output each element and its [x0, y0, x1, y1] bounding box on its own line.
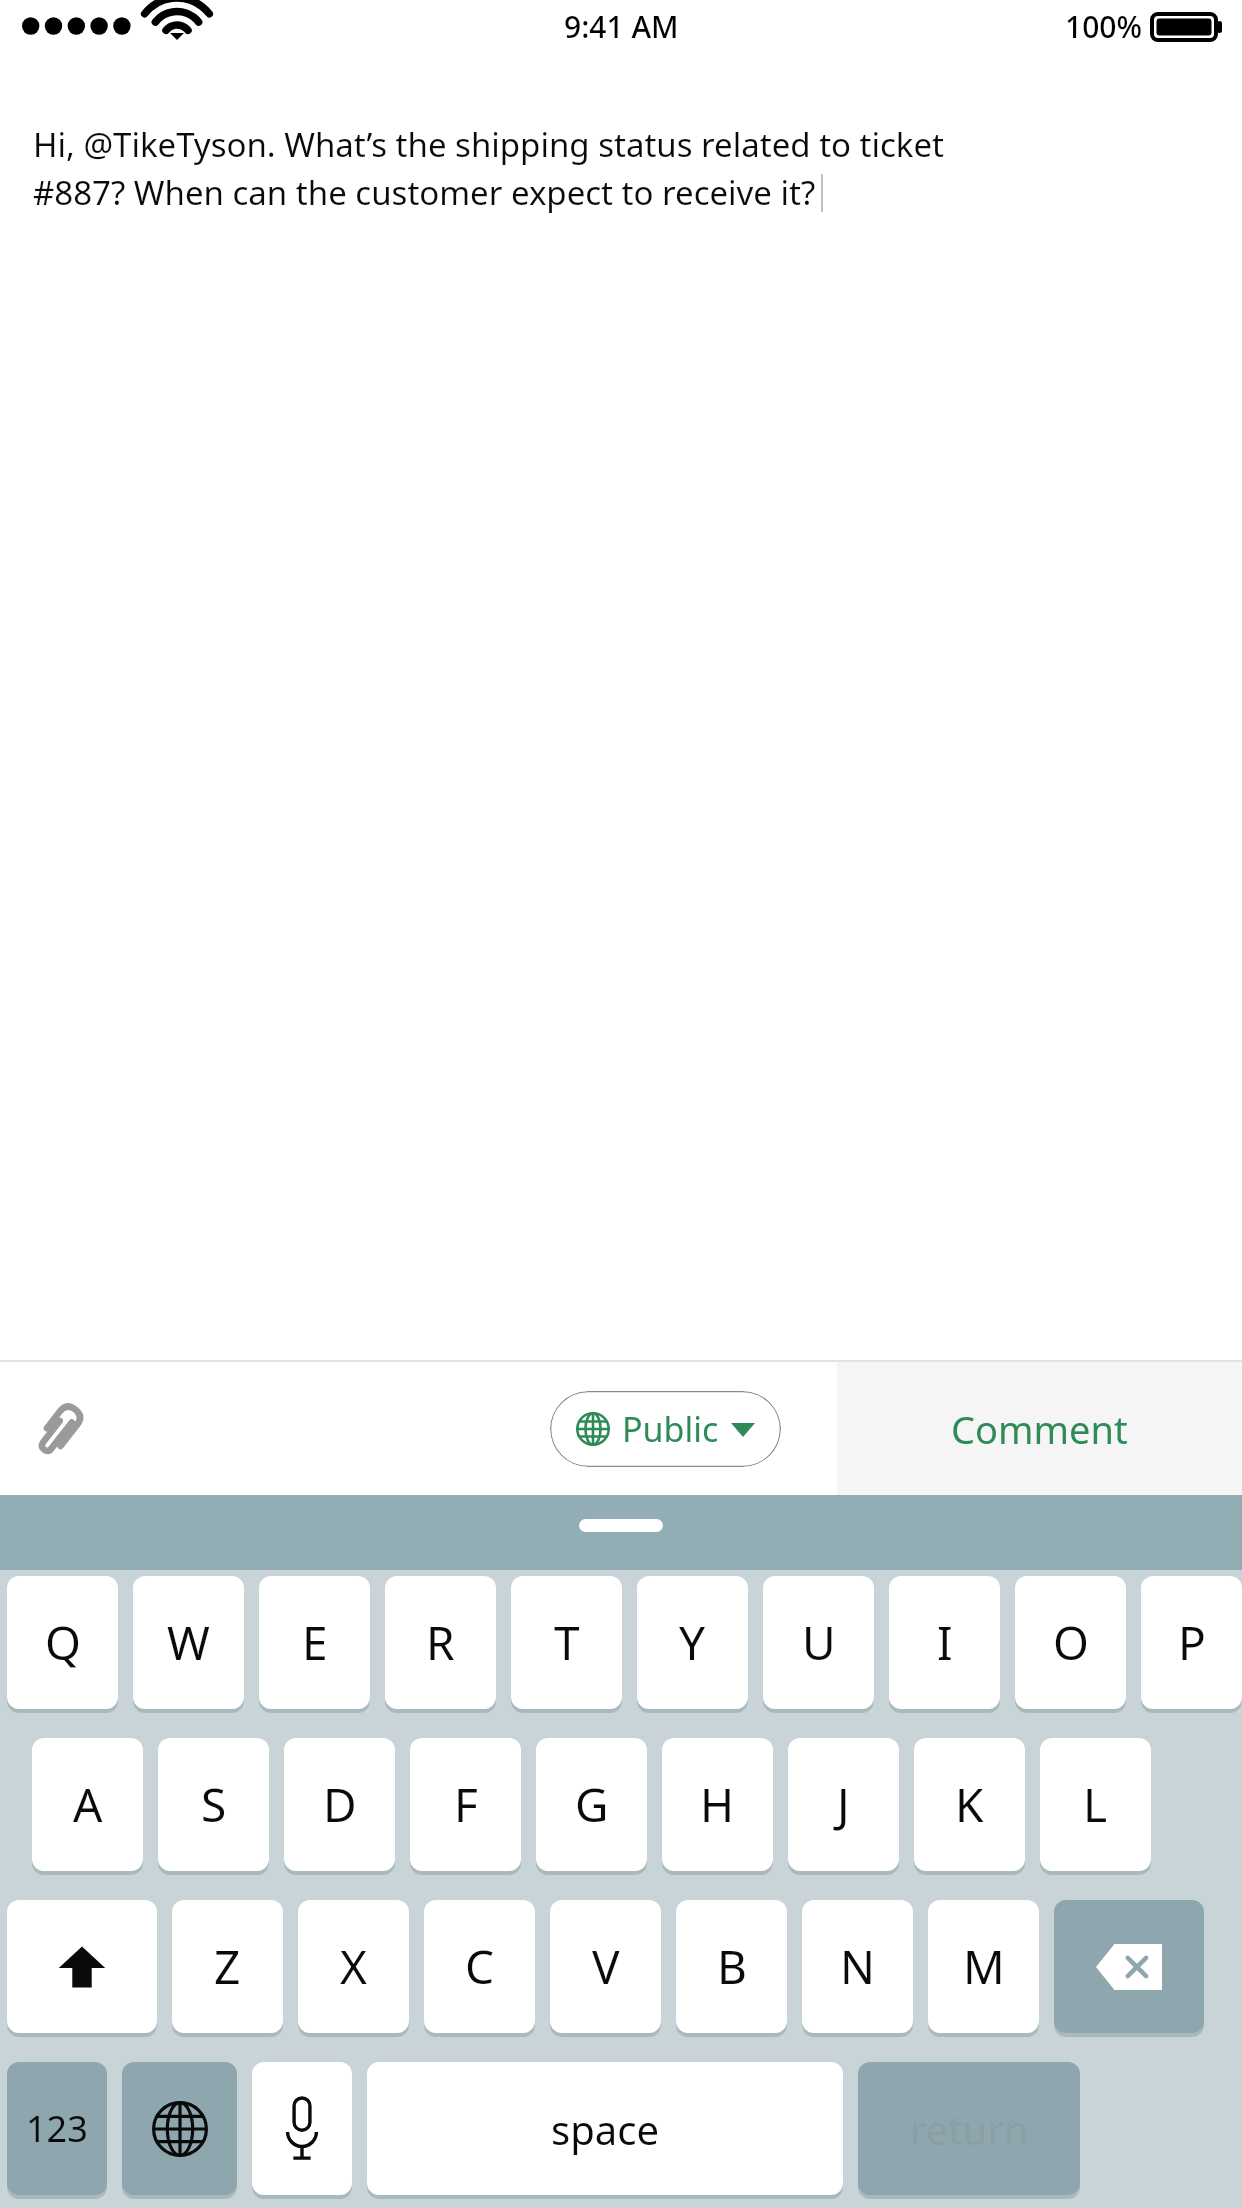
staticText: Y — [679, 1611, 706, 1674]
button[interactable]: return — [858, 2062, 1080, 2199]
staticText: M — [963, 1935, 1005, 1998]
staticText: X — [340, 1935, 367, 1998]
button[interactable]: U — [763, 1576, 874, 1713]
button[interactable]: N — [802, 1900, 913, 2037]
staticText: Z — [214, 1935, 241, 1998]
button[interactable]: D — [284, 1738, 395, 1875]
staticText: K — [955, 1773, 984, 1836]
button[interactable]: X — [298, 1900, 409, 2037]
button[interactable]: Hi, @TikeTyson. What’s the shipping stat… — [0, 52, 1242, 1360]
staticText: W — [167, 1611, 210, 1674]
staticText: 123 — [26, 2104, 88, 2153]
button[interactable]: V — [550, 1900, 661, 2037]
staticText: T — [554, 1611, 580, 1674]
staticText: Hi, @TikeTyson. What’s the shipping stat… — [33, 122, 944, 167]
staticText: S — [201, 1773, 227, 1836]
button[interactable]: H — [662, 1738, 773, 1875]
button[interactable]: A — [32, 1738, 143, 1875]
button[interactable]: S — [158, 1738, 269, 1875]
staticText: F — [454, 1773, 478, 1836]
staticText: J — [837, 1773, 850, 1836]
staticText: 100% — [1065, 6, 1143, 47]
staticText: Public — [622, 1406, 719, 1452]
staticText: Q — [45, 1611, 81, 1674]
button[interactable]: Q — [7, 1576, 118, 1713]
staticText: G — [575, 1773, 609, 1836]
staticText: C — [465, 1935, 495, 1998]
button[interactable]: B — [676, 1900, 787, 2037]
button[interactable]: T — [511, 1576, 622, 1713]
button[interactable]: Public — [550, 1391, 781, 1467]
staticText: #887? When can the customer expect to re… — [33, 170, 816, 215]
staticText: D — [323, 1773, 357, 1836]
staticText: space — [551, 2102, 659, 2156]
button[interactable]: J — [788, 1738, 899, 1875]
staticText: return — [910, 2102, 1029, 2156]
button[interactable]: Key — [1054, 1900, 1204, 2037]
staticText: V — [592, 1935, 620, 1998]
button[interactable]: L — [1040, 1738, 1151, 1875]
staticText: O — [1053, 1611, 1089, 1674]
button[interactable]: W — [133, 1576, 244, 1713]
button[interactable]: R — [385, 1576, 496, 1713]
staticText: 9:41 AM — [564, 6, 679, 47]
button[interactable]: Keyboard handle — [579, 1519, 663, 1532]
staticText: B — [717, 1935, 747, 1998]
button[interactable]: I — [889, 1576, 1000, 1713]
button[interactable]: C — [424, 1900, 535, 2037]
staticText: U — [802, 1611, 836, 1674]
staticText: H — [700, 1773, 735, 1836]
button[interactable]: Z — [172, 1900, 283, 2037]
button[interactable]: F — [410, 1738, 521, 1875]
staticText: L — [1083, 1773, 1108, 1836]
staticText: P — [1178, 1611, 1206, 1674]
staticText: N — [840, 1935, 875, 1998]
button[interactable]: P — [1141, 1576, 1242, 1713]
button[interactable]: G — [536, 1738, 647, 1875]
button[interactable]: Comment — [837, 1362, 1242, 1495]
button[interactable]: O — [1015, 1576, 1126, 1713]
button[interactable]: E — [259, 1576, 370, 1713]
button[interactable]: Key — [7, 1900, 157, 2037]
button[interactable]: 123 — [7, 2062, 107, 2199]
staticText: R — [426, 1611, 455, 1674]
staticText: A — [73, 1773, 103, 1836]
staticText: Comment — [951, 1403, 1128, 1455]
button[interactable]: Y — [637, 1576, 748, 1713]
button[interactable]: K — [914, 1738, 1025, 1875]
button[interactable]: Key — [252, 2062, 352, 2199]
staticText: E — [302, 1611, 328, 1674]
button[interactable]: space — [367, 2062, 843, 2199]
button[interactable]: Attach file — [12, 1381, 108, 1477]
staticText: I — [937, 1611, 953, 1674]
button[interactable]: M — [928, 1900, 1039, 2037]
button[interactable]: Key — [122, 2062, 237, 2199]
